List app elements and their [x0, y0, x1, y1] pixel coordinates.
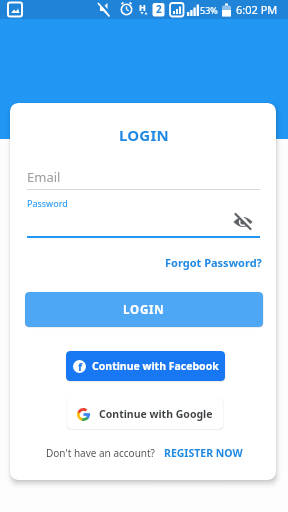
staticText: f — [78, 360, 83, 372]
staticText: REGISTER NOW — [164, 446, 243, 460]
staticText: H — [139, 1, 146, 13]
staticText: 6:02 PM — [236, 2, 278, 17]
staticText: 53% — [200, 4, 218, 16]
staticText: Forgot Password? — [165, 255, 262, 270]
staticText: Continue with Google — [99, 407, 213, 421]
staticText: Email — [27, 168, 61, 186]
staticText: Password — [27, 197, 68, 209]
staticText: Don't have an account? — [46, 446, 155, 460]
staticText: 2 — [156, 2, 162, 16]
staticText: LOGIN — [119, 125, 169, 145]
staticText: LOGIN — [123, 302, 165, 318]
staticText: Continue with Facebook — [92, 359, 219, 373]
